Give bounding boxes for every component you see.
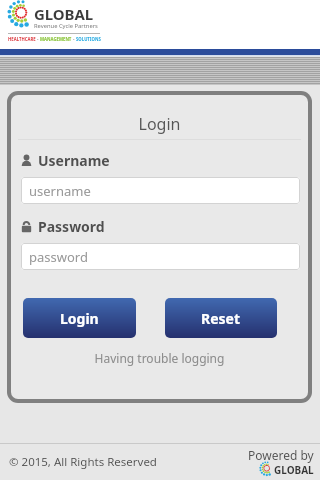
staticText: Login xyxy=(11,113,308,135)
staticText: MANAGEMENT xyxy=(40,36,72,42)
staticText: Login xyxy=(60,309,99,328)
button[interactable]: Having trouble logging xyxy=(11,347,308,369)
staticText: SOLUTIONS xyxy=(76,36,101,42)
button[interactable]: password xyxy=(21,243,300,270)
staticText: Password xyxy=(38,217,105,236)
staticText: username xyxy=(29,182,91,200)
staticText: • xyxy=(36,36,40,42)
staticText: © 2015, All Rights Reserved xyxy=(9,454,157,470)
button[interactable]: username xyxy=(21,177,300,204)
button[interactable]: Login xyxy=(23,298,136,338)
staticText: GLOBAL xyxy=(274,463,314,477)
staticText: Having trouble logging xyxy=(11,350,308,366)
staticText: Powered by xyxy=(248,447,314,463)
staticText: Username xyxy=(38,151,110,170)
staticText: Revenue Cycle Partners xyxy=(34,22,98,30)
staticText: Reset xyxy=(201,309,241,328)
button[interactable]: Reset xyxy=(165,298,277,338)
staticText: HEALTHCARE xyxy=(8,36,36,42)
staticText: password xyxy=(29,248,88,266)
staticText: • xyxy=(72,36,76,42)
staticText: GLOBAL xyxy=(34,4,93,24)
